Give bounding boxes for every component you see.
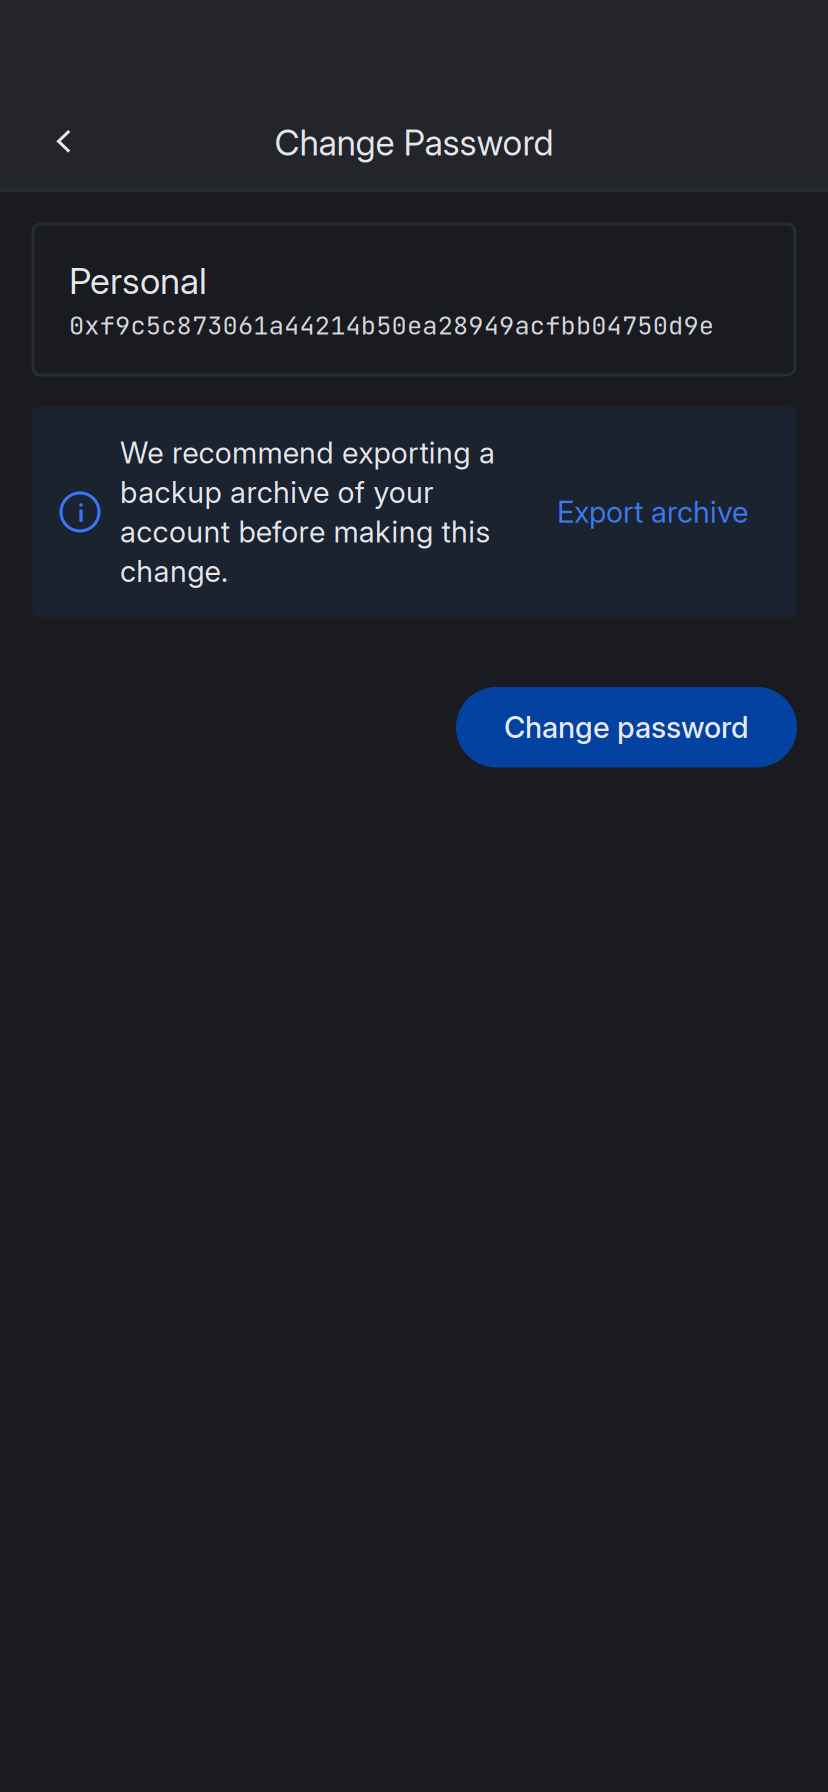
staticText: Change password bbox=[504, 709, 749, 745]
button[interactable]: Export archive bbox=[557, 484, 796, 540]
button[interactable]: Change password bbox=[456, 687, 797, 767]
staticText: We recommend exporting a backup archive … bbox=[120, 435, 495, 589]
staticText: 0xf9c5c873061a44214b50ea28949acfbb04750d… bbox=[69, 309, 714, 342]
staticText: Export archive bbox=[557, 494, 748, 530]
button[interactable]: Back bbox=[28, 104, 104, 180]
staticText: Change Password bbox=[274, 122, 553, 164]
staticText: Personal bbox=[69, 259, 207, 303]
